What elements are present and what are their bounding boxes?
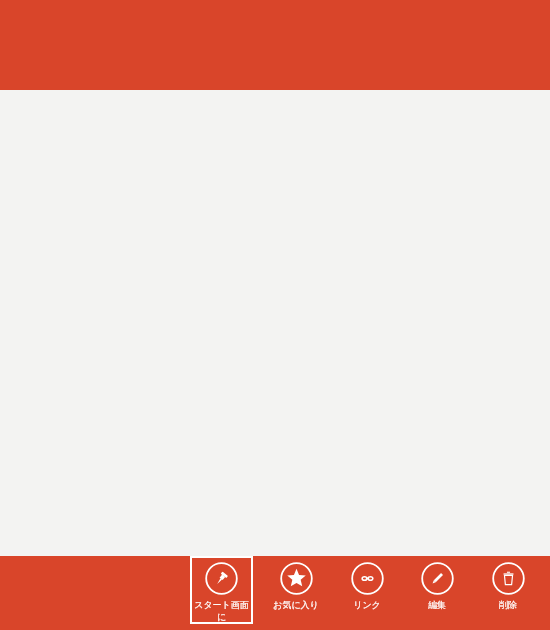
staticText: お気に入り [268, 599, 324, 610]
button[interactable]: お気に入り [268, 556, 324, 624]
button[interactable]: 削除 [480, 556, 536, 624]
staticText: 削除 [480, 599, 536, 610]
button[interactable]: スタート画面にピン留め [190, 556, 253, 624]
staticText: リンク [339, 599, 395, 610]
staticText: スタート画面に ピン留め [190, 599, 253, 624]
staticText: 編集 [409, 599, 465, 610]
button[interactable]: 編集 [409, 556, 465, 624]
button[interactable]: リンク [339, 556, 395, 624]
